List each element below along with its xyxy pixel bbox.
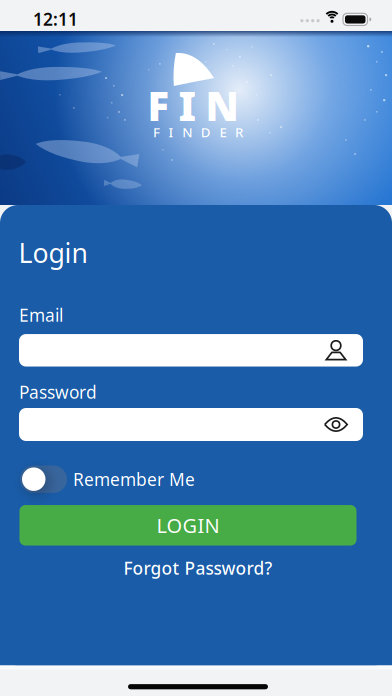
staticText: Password [19, 380, 97, 403]
staticText: FIN [147, 79, 238, 132]
staticText: Remember Me [73, 468, 195, 491]
staticText: LOGIN [156, 512, 219, 539]
button[interactable]: LOGIN [19, 505, 356, 545]
staticText: Email [19, 303, 63, 326]
staticText: Login [18, 235, 87, 270]
staticText: FINDER [153, 123, 243, 141]
button[interactable] [19, 334, 363, 367]
button[interactable] [19, 408, 363, 441]
button[interactable] [20, 465, 67, 493]
staticText: 12:11 [33, 7, 78, 30]
staticText: Forgot Password? [123, 556, 272, 579]
button[interactable]: Forgot Password? [123, 556, 272, 579]
